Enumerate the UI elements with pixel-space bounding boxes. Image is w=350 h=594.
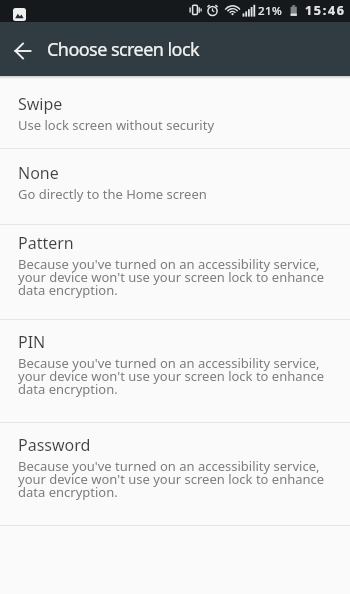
button[interactable]: Password	[0, 423, 350, 525]
staticText: 21%	[258, 3, 283, 19]
staticText: Password	[18, 434, 91, 456]
staticText: None	[18, 162, 59, 184]
staticText: Because you've turned on an accessibilit…	[18, 457, 325, 501]
staticText: Because you've turned on an accessibilit…	[18, 255, 325, 299]
button[interactable]	[0, 22, 46, 76]
staticText: Pattern	[18, 232, 74, 254]
staticText: Go directly to the Home screen	[18, 185, 207, 203]
button[interactable]: PIN	[0, 320, 350, 422]
staticText: Use lock screen without security	[18, 116, 215, 134]
button[interactable]: None	[0, 149, 350, 224]
staticText: Because you've turned on an accessibilit…	[18, 354, 325, 398]
staticText: 15:46	[305, 2, 346, 19]
staticText: Swipe	[18, 93, 63, 115]
staticText: Choose screen lock	[47, 37, 200, 62]
button[interactable]: Swipe	[0, 79, 350, 148]
button[interactable]: Pattern	[0, 225, 350, 319]
staticText: PIN	[18, 331, 46, 353]
